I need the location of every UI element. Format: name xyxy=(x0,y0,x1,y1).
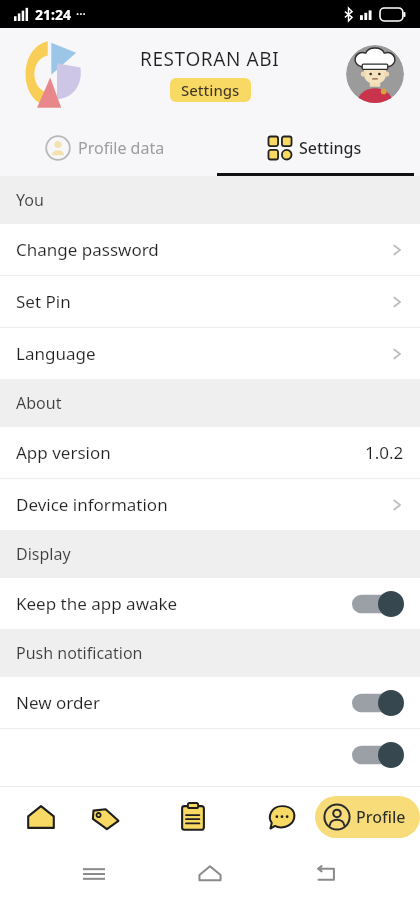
button[interactable]: App version xyxy=(0,427,420,478)
button[interactable]: Chat xyxy=(259,794,305,840)
other: Toggle New order xyxy=(352,690,404,716)
staticText: Settings xyxy=(299,137,362,159)
button[interactable]: Set Pin xyxy=(0,276,420,327)
button[interactable]: Keep the app awake xyxy=(0,578,420,629)
button[interactable]: Profile xyxy=(315,796,420,838)
staticText: Set Pin xyxy=(16,290,71,313)
staticText: New order xyxy=(16,691,100,714)
button[interactable]: Language xyxy=(0,328,420,379)
staticText: Change password xyxy=(16,238,159,261)
staticText: Profile xyxy=(356,806,406,828)
button[interactable]: Promotions xyxy=(82,794,128,840)
button[interactable]: Profile data xyxy=(0,120,210,176)
staticText: Settings xyxy=(181,80,240,100)
staticText: 1.0.2 xyxy=(365,441,404,464)
staticText: 21:24 xyxy=(35,5,71,24)
staticText: Display xyxy=(16,543,71,565)
staticText: Push notification xyxy=(16,642,143,664)
staticText: Device information xyxy=(16,493,168,516)
staticText: Language xyxy=(16,342,96,365)
staticText: ··· xyxy=(76,6,86,22)
button[interactable]: Profile avatar xyxy=(346,45,404,103)
button[interactable]: Settings xyxy=(170,78,251,102)
button[interactable]: Home xyxy=(18,794,64,840)
staticText: App version xyxy=(16,441,111,464)
button[interactable]: Back xyxy=(304,852,348,896)
staticText: RESTORAN ABI xyxy=(140,46,280,72)
button[interactable]: Change password xyxy=(0,224,420,275)
staticText: About xyxy=(16,392,62,414)
staticText: Profile data xyxy=(78,137,165,159)
button[interactable]: New order xyxy=(0,677,420,728)
button[interactable]: Orders xyxy=(170,794,216,840)
staticText: You xyxy=(16,189,44,211)
button[interactable]: Home xyxy=(188,852,232,896)
button[interactable]: Device information xyxy=(0,479,420,530)
other: Toggle xyxy=(352,742,404,768)
other: Toggle Keep the app awake xyxy=(352,591,404,617)
button[interactable]: Settings xyxy=(210,120,420,176)
staticText: Keep the app awake xyxy=(16,592,178,615)
button[interactable]: Recents xyxy=(72,852,116,896)
button[interactable]: Toggle xyxy=(0,729,420,780)
